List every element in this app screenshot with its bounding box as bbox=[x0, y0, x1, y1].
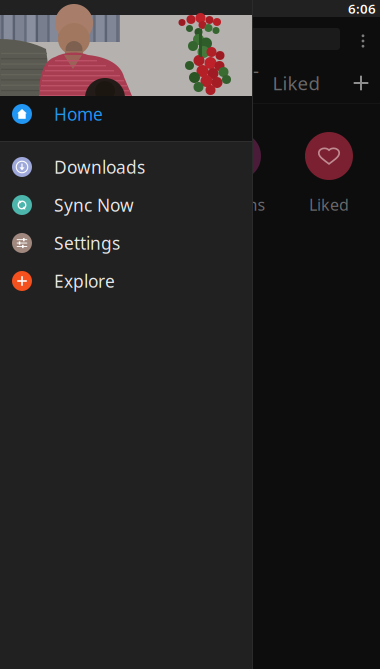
staticText: Photos bbox=[147, 58, 205, 108]
button[interactable]: Downloads bbox=[0, 148, 253, 186]
button[interactable]: Search bbox=[156, 28, 340, 50]
staticText: Explore bbox=[54, 269, 115, 292]
staticText: Downloads bbox=[54, 155, 145, 178]
button[interactable]: Photos bbox=[146, 62, 206, 104]
button[interactable]: Albums bbox=[206, 62, 266, 104]
staticText: Sync Now bbox=[54, 193, 134, 216]
button[interactable]: Add bbox=[343, 62, 379, 104]
button[interactable]: Liked bbox=[305, 132, 353, 180]
button[interactable]: Liked bbox=[266, 62, 326, 104]
staticText: Settings bbox=[54, 231, 120, 254]
button[interactable]: Sync Now bbox=[0, 186, 253, 224]
staticText: Liked bbox=[309, 194, 349, 215]
button[interactable]: More options bbox=[346, 22, 380, 60]
staticText: Liked bbox=[272, 71, 319, 95]
staticText: 6:06 bbox=[348, 0, 376, 17]
staticText: Albums bbox=[208, 194, 265, 215]
button[interactable]: Home bbox=[0, 96, 253, 132]
staticText: Home bbox=[54, 102, 103, 125]
button[interactable]: Explore bbox=[0, 262, 253, 300]
staticText: Albums bbox=[213, 58, 259, 108]
button[interactable]: Settings bbox=[0, 224, 253, 262]
button[interactable]: Albums bbox=[213, 132, 261, 180]
